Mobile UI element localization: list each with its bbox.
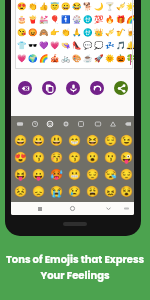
- button[interactable]: Keyboard: [16, 120, 24, 128]
- staticText: 😃: [50, 134, 63, 146]
- staticText: 🔔: [126, 41, 134, 50]
- staticText: 🌙: [94, 2, 104, 11]
- staticText: 😪: [104, 168, 117, 180]
- staticText: 🎈: [50, 15, 60, 24]
- staticText: 😢: [68, 185, 81, 197]
- staticText: 😄: [14, 134, 27, 146]
- button[interactable]: Voice input: [66, 81, 80, 95]
- staticText: 🍟: [28, 15, 38, 24]
- button[interactable]: Emoji: [46, 120, 54, 128]
- button[interactable]: GIF: [94, 120, 102, 128]
- button[interactable]: Recent: [31, 120, 39, 128]
- button[interactable]: Undo: [90, 81, 104, 95]
- staticText: 😵: [120, 185, 133, 197]
- button[interactable]: Backspace: [124, 120, 132, 128]
- staticText: 😣: [14, 185, 27, 197]
- staticText: 😬: [68, 168, 81, 180]
- staticText: 🍺: [126, 28, 134, 37]
- staticText: 😀: [32, 134, 45, 146]
- staticText: 🌈: [39, 54, 49, 63]
- staticText: 🎂: [17, 15, 27, 24]
- staticText: 👉: [50, 28, 60, 37]
- staticText: 🎨: [72, 54, 82, 63]
- staticText: 💒: [39, 15, 49, 24]
- staticText: 🎡: [72, 15, 82, 24]
- staticText: 😛: [32, 168, 45, 180]
- staticText: 😀: [61, 2, 71, 11]
- staticText: 🚹: [61, 15, 71, 24]
- staticText: 🙈: [39, 28, 49, 37]
- staticText: 👑: [94, 28, 104, 37]
- button[interactable]: Stickers: [77, 120, 85, 128]
- staticText: 🌟: [126, 2, 134, 11]
- staticText: 😉: [120, 134, 133, 146]
- staticText: 😆: [86, 134, 99, 146]
- staticText: 🎺: [116, 2, 126, 11]
- staticText: 😖: [104, 185, 117, 197]
- staticText: 🎷: [116, 28, 126, 37]
- button[interactable]: Recent apps: [36, 205, 43, 212]
- staticText: 😇: [50, 2, 60, 11]
- staticText: 💜: [39, 41, 49, 50]
- staticText: 😞: [32, 185, 45, 197]
- staticText: 💬: [83, 41, 93, 50]
- staticText: 🥵: [50, 168, 63, 180]
- button[interactable]: Copy: [42, 81, 56, 95]
- staticText: 🚲: [61, 54, 71, 63]
- staticText: 😗: [104, 151, 117, 163]
- staticText: ⛎: [83, 15, 93, 24]
- staticText: 🎪: [50, 54, 60, 63]
- staticText: 💤: [105, 41, 115, 50]
- staticText: 😚: [50, 151, 63, 163]
- staticText: 👒: [61, 41, 71, 50]
- staticText: 😘: [17, 28, 27, 37]
- staticText: 💗: [50, 41, 60, 50]
- staticText: 👏: [61, 28, 71, 37]
- button[interactable]: Share: [114, 81, 128, 95]
- staticText: 👏: [28, 2, 38, 11]
- staticText: 😍: [14, 151, 27, 163]
- button[interactable]: Theme: [109, 120, 117, 128]
- staticText: ☕: [83, 54, 93, 63]
- staticText: 👍: [39, 2, 49, 11]
- staticText: 🍸: [105, 2, 115, 11]
- button[interactable]: Settings: [62, 120, 70, 128]
- staticText: 🔥: [105, 15, 115, 24]
- staticText: 👠: [72, 41, 82, 50]
- staticText: 🎵: [116, 41, 126, 50]
- staticText: 🎺: [105, 28, 115, 37]
- staticText: Tons of Emojis that Express Your Feeling…: [0, 252, 150, 282]
- staticText: 😔: [86, 168, 99, 180]
- staticText: 😗: [32, 151, 45, 163]
- staticText: 😁: [68, 134, 81, 146]
- staticText: 🌞: [105, 54, 115, 63]
- staticText: 😌: [104, 134, 117, 146]
- staticText: 😭: [50, 185, 63, 197]
- staticText: 😔: [120, 168, 133, 180]
- staticText: 🎃: [116, 54, 126, 63]
- staticText: 😡: [28, 28, 38, 37]
- staticText: 💗: [17, 54, 27, 63]
- staticText: 😍: [17, 2, 27, 11]
- staticText: 😙: [68, 151, 81, 163]
- button[interactable]: Hide keyboard: [105, 205, 112, 212]
- staticText: 😜: [120, 151, 133, 163]
- staticText: 😮: [86, 151, 99, 163]
- staticText: 👕: [17, 41, 27, 50]
- button[interactable]: Switch keyboard: [123, 205, 130, 212]
- staticText: 🌈: [126, 15, 134, 24]
- staticText: 🚀: [94, 54, 104, 63]
- staticText: 💯: [94, 15, 104, 24]
- staticText: 🍀: [126, 54, 134, 63]
- staticText: ⛎: [83, 28, 93, 37]
- staticText: 😩: [86, 185, 99, 197]
- staticText: 🐕: [83, 2, 93, 11]
- staticText: 😝: [14, 168, 27, 180]
- staticText: 🎁: [116, 15, 126, 24]
- button[interactable]: Delete: [18, 81, 32, 95]
- staticText: 😂: [72, 2, 82, 11]
- staticText: 🙏: [72, 28, 82, 37]
- staticText: 🌍: [28, 54, 38, 63]
- button[interactable]: Home: [69, 205, 76, 212]
- staticText: 💭: [94, 41, 104, 50]
